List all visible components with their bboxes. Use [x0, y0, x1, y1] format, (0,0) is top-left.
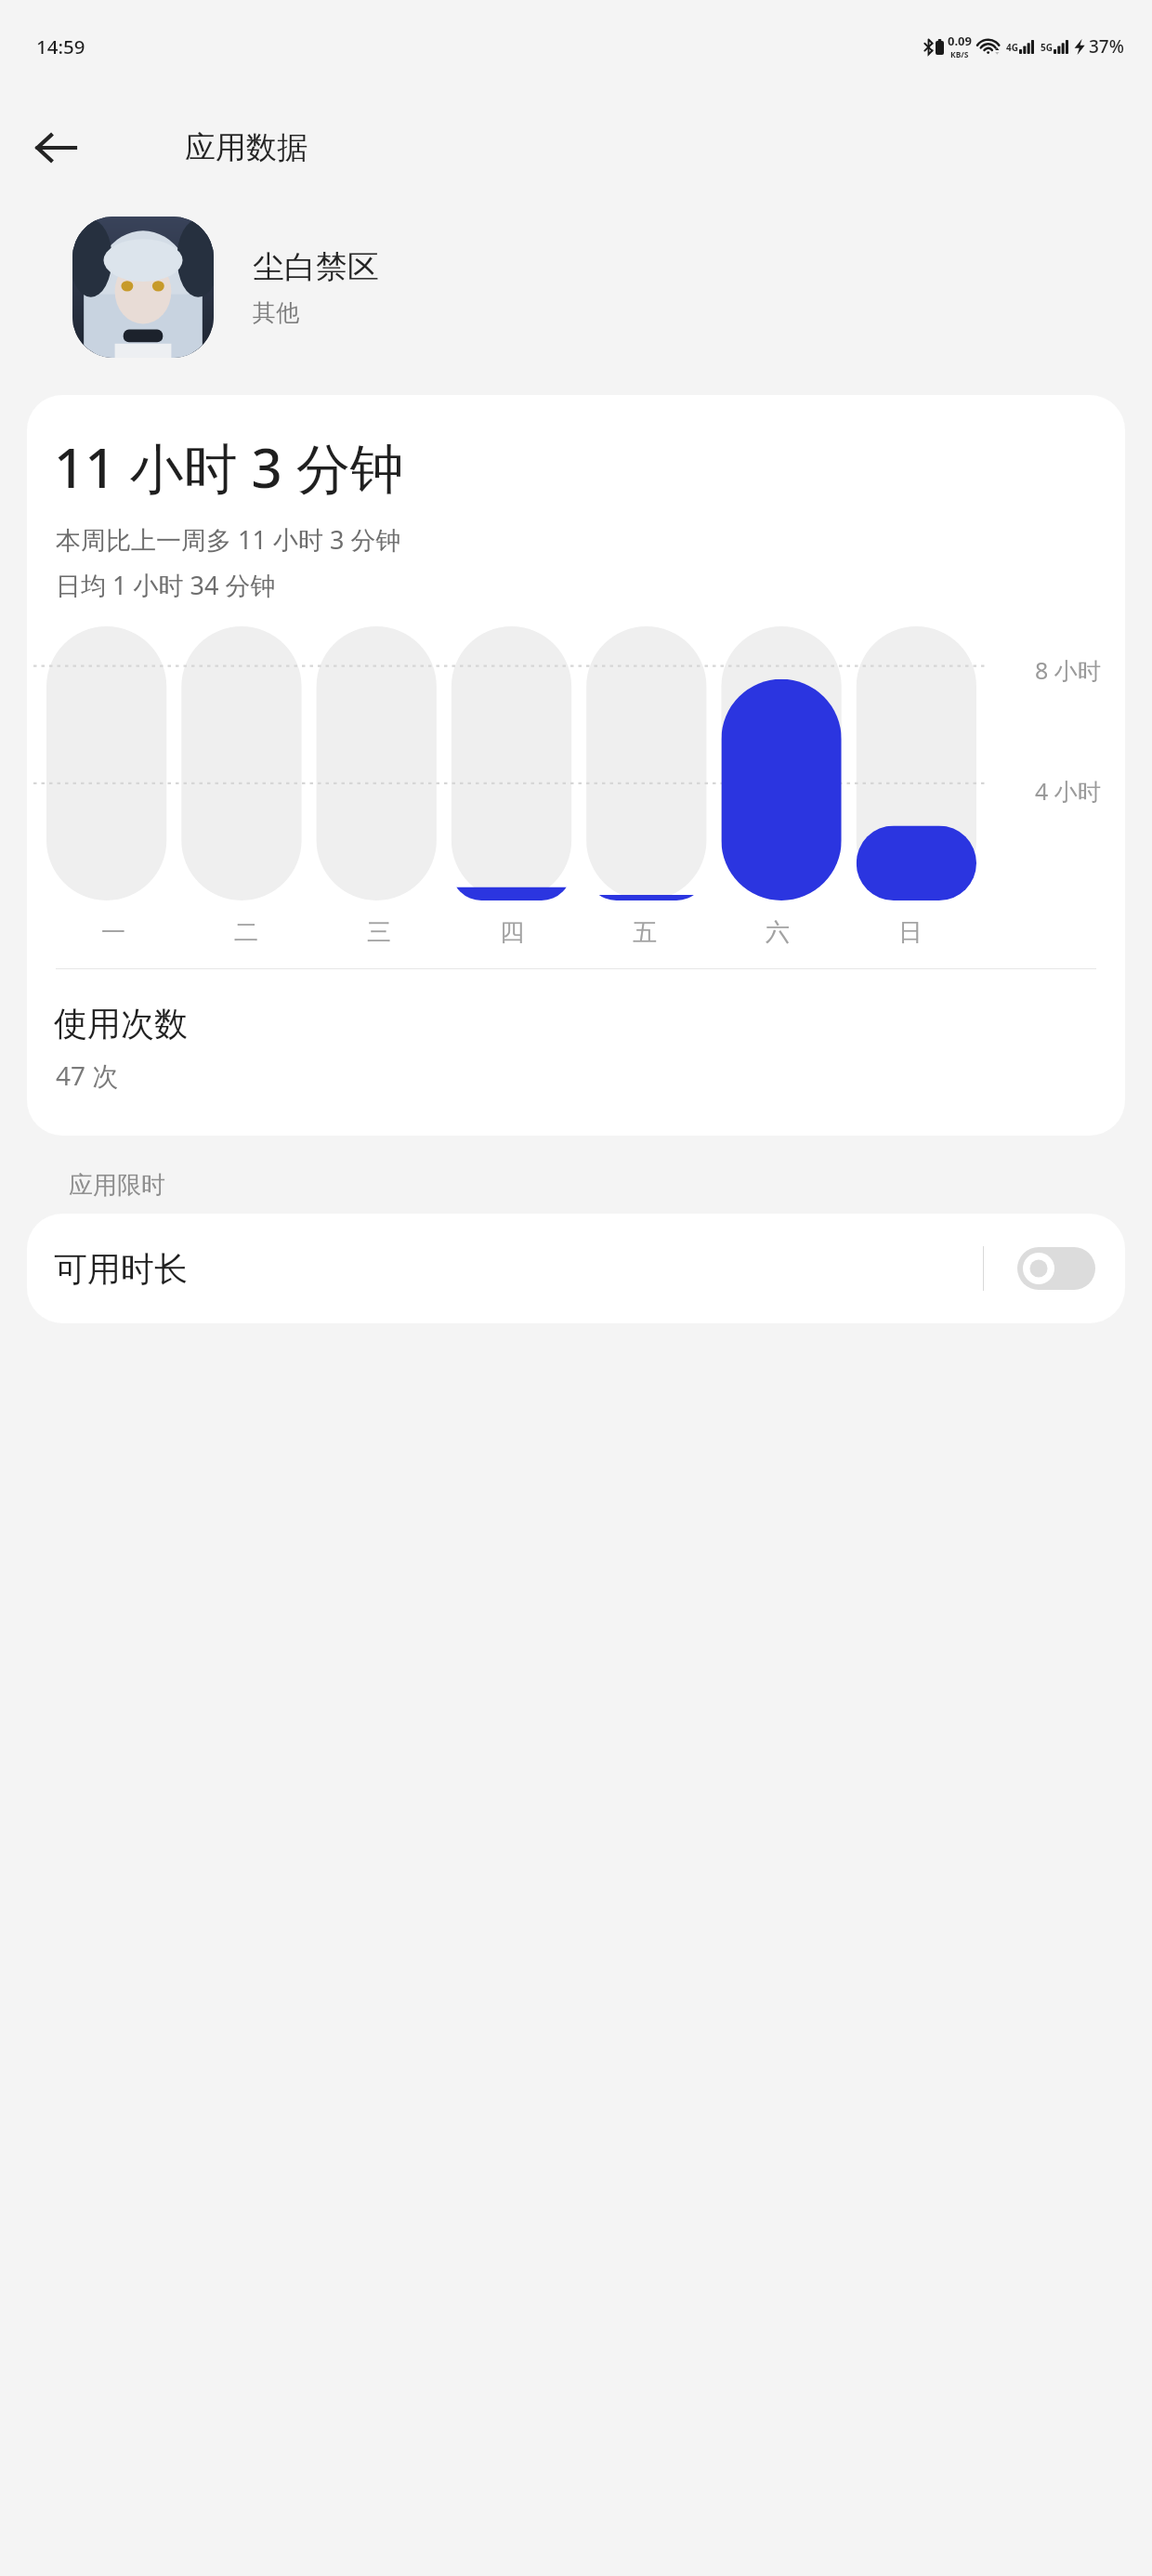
staticText: 一 — [101, 917, 125, 948]
button[interactable]: 返回 — [20, 112, 91, 183]
staticText: 37% — [1089, 34, 1124, 59]
button[interactable]: 可用时长 — [27, 1214, 1125, 1323]
staticText: 日 — [898, 917, 923, 948]
staticText: 五 — [633, 917, 657, 948]
staticText: 4G — [1006, 41, 1018, 54]
staticText: 三 — [367, 917, 391, 948]
staticText: 使用次数 — [54, 1003, 188, 1045]
staticText: KB/S — [950, 49, 969, 60]
staticText: 11 小时 3 分钟 — [54, 430, 404, 504]
staticText: 14:59 — [36, 33, 85, 59]
staticText: 4 小时 — [1035, 775, 1101, 807]
staticText: 日均 1 小时 34 分钟 — [56, 568, 276, 602]
staticText: 其他 — [253, 298, 299, 327]
staticText: 二 — [234, 917, 258, 948]
staticText: 应用限时 — [69, 1170, 165, 1201]
staticText: 尘白禁区 — [253, 247, 379, 287]
staticText: 8 小时 — [1035, 654, 1101, 686]
staticText: 四 — [500, 917, 524, 948]
staticText: 本周比上一周多 11 小时 3 分钟 — [56, 522, 401, 557]
staticText: 可用时长 — [54, 1248, 188, 1290]
staticText: 0.09 — [948, 33, 972, 49]
staticText: 5G — [1041, 41, 1053, 54]
staticText: 47 次 — [56, 1058, 119, 1093]
button[interactable]: 可用时长开关 — [1017, 1247, 1095, 1290]
staticText: 六 — [766, 917, 790, 948]
staticText: 应用数据 — [185, 128, 308, 167]
